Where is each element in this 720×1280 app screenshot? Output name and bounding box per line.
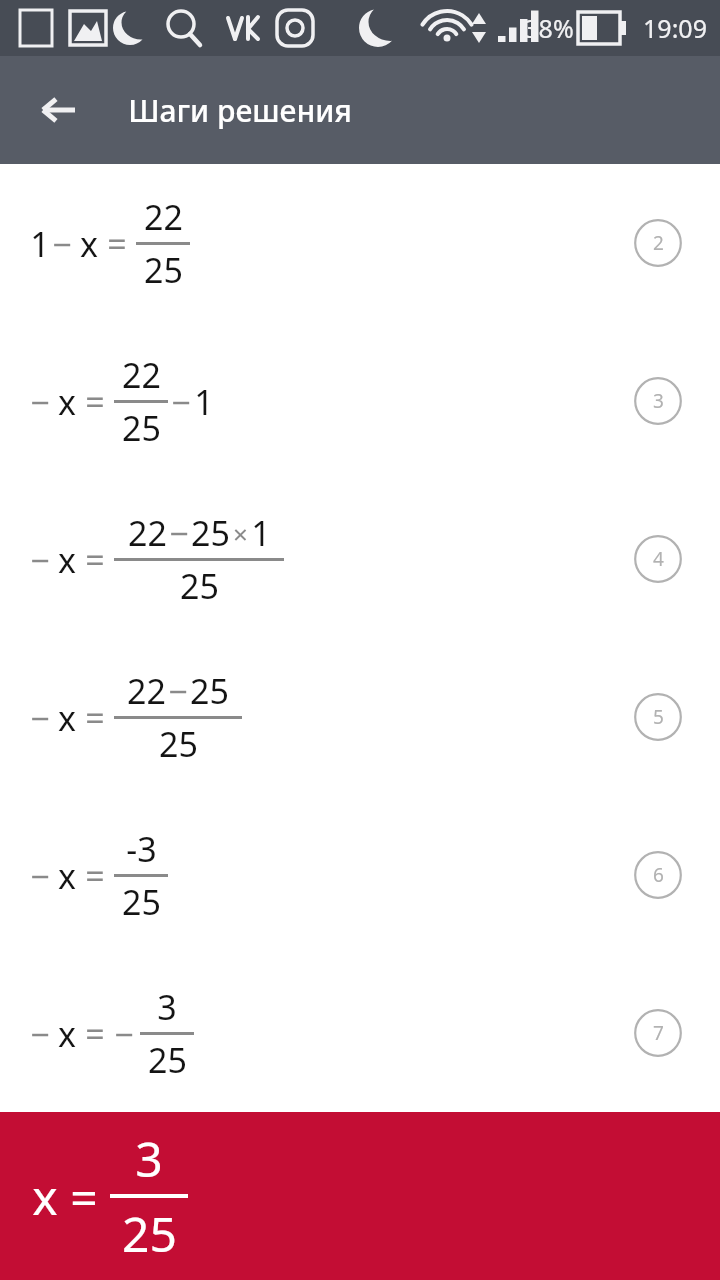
- staticText: =: [85, 853, 105, 899]
- staticText: =: [70, 1164, 98, 1229]
- button[interactable]: −: [0, 796, 720, 954]
- staticText: =: [85, 695, 105, 741]
- staticText: 25: [159, 721, 198, 767]
- staticText: −: [30, 1011, 50, 1057]
- staticText: 1: [194, 379, 214, 425]
- staticText: −: [30, 695, 50, 741]
- staticText: x: [58, 853, 76, 899]
- button[interactable]: x: [0, 1112, 720, 1280]
- staticText: 25: [148, 1037, 187, 1083]
- staticText: 38%: [524, 11, 574, 45]
- staticText: −: [169, 510, 189, 556]
- staticText: 1: [251, 510, 271, 556]
- staticText: −: [30, 537, 50, 583]
- staticText: −: [30, 853, 50, 899]
- staticText: =: [107, 221, 127, 267]
- button[interactable]: −: [0, 322, 720, 480]
- staticText: 3: [135, 1126, 163, 1191]
- staticText: −: [168, 668, 188, 714]
- staticText: 6: [653, 862, 664, 888]
- staticText: 22: [122, 352, 161, 398]
- staticText: Шаги решения: [128, 90, 352, 131]
- staticText: 25: [122, 1201, 177, 1266]
- staticText: x: [58, 537, 76, 583]
- staticText: x: [58, 695, 76, 741]
- staticText: 3: [157, 984, 177, 1030]
- staticText: 22: [127, 668, 166, 714]
- staticText: x: [58, 379, 76, 425]
- staticText: −: [114, 1011, 134, 1057]
- staticText: 25: [122, 405, 161, 451]
- staticText: 22: [128, 510, 167, 556]
- staticText: 4: [653, 546, 664, 572]
- staticText: x: [80, 221, 98, 267]
- staticText: 7: [653, 1020, 664, 1046]
- staticText: 25: [190, 668, 229, 714]
- staticText: 3: [653, 388, 664, 414]
- staticText: −: [30, 379, 50, 425]
- staticText: -3: [126, 826, 157, 872]
- staticText: 25: [122, 879, 161, 925]
- staticText: =: [85, 379, 105, 425]
- staticText: 25: [180, 563, 219, 609]
- staticText: 5: [653, 704, 664, 730]
- staticText: 22: [144, 194, 183, 240]
- button[interactable]: Back: [26, 78, 90, 142]
- button[interactable]: −: [0, 480, 720, 638]
- button[interactable]: −: [0, 954, 720, 1112]
- staticText: =: [85, 1011, 105, 1057]
- staticText: 25: [144, 247, 183, 293]
- staticText: 19:09: [643, 11, 707, 45]
- staticText: x: [58, 1011, 76, 1057]
- button[interactable]: 1: [0, 164, 720, 322]
- staticText: ×: [233, 516, 248, 551]
- staticText: =: [85, 537, 105, 583]
- staticText: 25: [191, 510, 230, 556]
- staticText: 1: [30, 221, 50, 267]
- staticText: x: [32, 1164, 58, 1229]
- staticText: 2: [653, 230, 664, 256]
- button[interactable]: −: [0, 638, 720, 796]
- staticText: −: [171, 379, 191, 425]
- staticText: −: [52, 221, 72, 267]
